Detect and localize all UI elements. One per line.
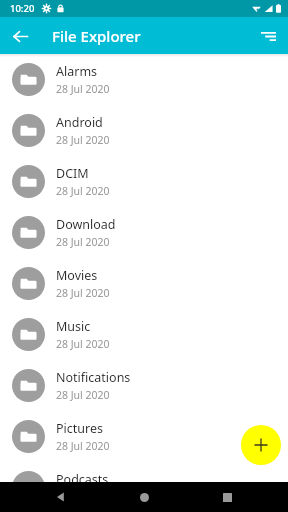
button[interactable]: Notifications — [0, 360, 288, 411]
button[interactable]: Podcasts — [0, 462, 288, 512]
staticText: Download — [56, 216, 116, 233]
button[interactable]: Pictures — [0, 411, 288, 462]
staticText: 28 Jul 2020 — [56, 490, 110, 504]
staticText: 10:20 — [10, 2, 35, 15]
button[interactable]: Download — [0, 207, 288, 258]
staticText: 28 Jul 2020 — [56, 184, 110, 198]
staticText: 28 Jul 2020 — [56, 337, 110, 351]
button[interactable]: Add — [241, 425, 281, 465]
button[interactable]: Music — [0, 309, 288, 360]
button[interactable]: Back — [48, 484, 74, 510]
staticText: 28 Jul 2020 — [56, 388, 110, 402]
staticText: 28 Jul 2020 — [56, 235, 110, 249]
staticText: 28 Jul 2020 — [56, 82, 110, 96]
button[interactable]: Sort — [252, 20, 284, 52]
staticText: 28 Jul 2020 — [56, 133, 110, 147]
staticText: 28 Jul 2020 — [56, 439, 110, 453]
button[interactable]: Alarms — [0, 54, 288, 105]
staticText: Movies — [56, 267, 98, 284]
button[interactable]: DCIM — [0, 156, 288, 207]
staticText: Alarms — [56, 63, 98, 80]
staticText: Android — [56, 114, 103, 131]
button[interactable]: Android — [0, 105, 288, 156]
staticText: Notifications — [56, 369, 131, 386]
staticText: 28 Jul 2020 — [56, 286, 110, 300]
staticText: Pictures — [56, 420, 103, 437]
staticText: DCIM — [56, 165, 89, 182]
button[interactable]: Back — [4, 20, 36, 52]
button[interactable]: Home — [131, 484, 157, 510]
staticText: Music — [56, 318, 91, 335]
button[interactable]: Recent apps — [214, 484, 240, 510]
staticText: File Explorer — [52, 26, 141, 46]
staticText: Podcasts — [56, 471, 109, 488]
button[interactable]: Movies — [0, 258, 288, 309]
